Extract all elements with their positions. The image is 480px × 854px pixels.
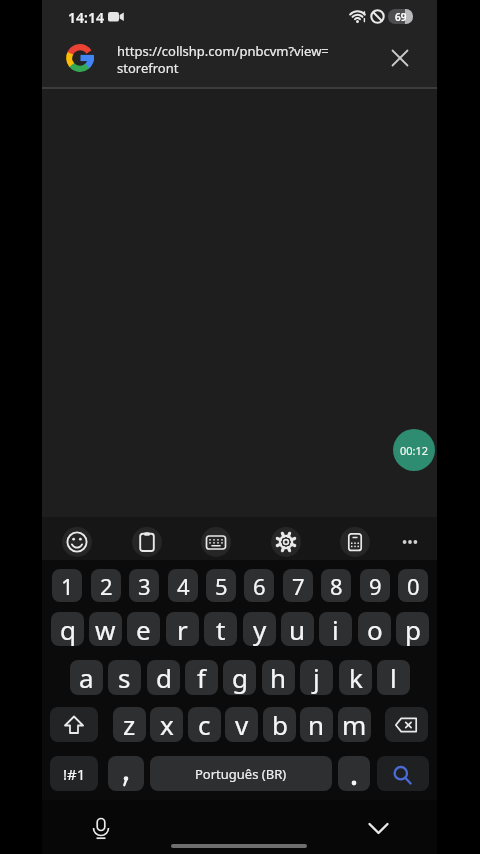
button[interactable] xyxy=(377,756,429,791)
staticText: 0 xyxy=(407,571,420,601)
staticText: p xyxy=(405,612,421,646)
button[interactable]: 2 xyxy=(91,569,121,602)
staticText: y xyxy=(253,612,267,646)
button[interactable]: 8 xyxy=(321,569,351,602)
staticText: Português (BR) xyxy=(195,765,287,783)
button[interactable] xyxy=(108,756,144,791)
staticText: c xyxy=(198,707,211,742)
staticText: o xyxy=(367,612,383,646)
staticText: m xyxy=(342,707,367,742)
button[interactable]: c xyxy=(188,707,221,742)
button[interactable]: z xyxy=(113,707,146,742)
staticText: z xyxy=(123,707,136,742)
staticText: w xyxy=(95,612,116,646)
button[interactable] xyxy=(132,527,162,557)
button[interactable] xyxy=(271,527,301,557)
button[interactable]: b xyxy=(263,707,296,742)
staticText: https://collshp.com/pnbcvm?view= storefr… xyxy=(117,42,329,77)
staticText: i xyxy=(332,612,339,646)
button[interactable] xyxy=(388,46,412,70)
button[interactable] xyxy=(340,527,370,557)
button[interactable] xyxy=(395,527,425,557)
button[interactable]: f xyxy=(185,660,218,695)
button[interactable] xyxy=(88,815,114,841)
button[interactable]: 6 xyxy=(244,569,274,602)
staticText: s xyxy=(118,660,131,695)
button[interactable]: t xyxy=(204,612,237,646)
button[interactable]: 3 xyxy=(129,569,159,602)
button[interactable]: u xyxy=(281,612,314,646)
button[interactable]: p xyxy=(396,612,429,646)
button[interactable]: o xyxy=(358,612,391,646)
staticText: 14:14 xyxy=(68,8,104,27)
button[interactable]: 9 xyxy=(360,569,390,602)
staticText: b xyxy=(272,707,288,742)
button[interactable]: a xyxy=(70,660,103,695)
staticText: v xyxy=(235,707,249,742)
button[interactable] xyxy=(338,756,370,791)
button[interactable]: w xyxy=(89,612,122,646)
staticText: 7 xyxy=(292,571,305,601)
staticText: 6 xyxy=(253,571,266,601)
staticText: u xyxy=(289,612,306,646)
button[interactable]: Português (BR) xyxy=(150,756,332,791)
staticText: e xyxy=(136,612,151,646)
button[interactable]: j xyxy=(300,660,333,695)
button[interactable]: v xyxy=(225,707,258,742)
button[interactable]: g xyxy=(223,660,256,695)
button[interactable]: 0 xyxy=(398,569,428,602)
button[interactable]: l xyxy=(377,660,410,695)
staticText: h xyxy=(270,660,287,695)
button[interactable]: 1 xyxy=(52,569,82,602)
staticText: k xyxy=(349,660,363,695)
button[interactable]: m xyxy=(338,707,371,742)
staticText: 8 xyxy=(330,571,343,601)
staticText: x xyxy=(160,707,174,742)
staticText: f xyxy=(197,660,206,695)
button[interactable]: r xyxy=(166,612,199,646)
staticText: 69 xyxy=(395,10,407,24)
button[interactable]: h xyxy=(262,660,295,695)
button[interactable]: s xyxy=(108,660,141,695)
staticText: 2 xyxy=(100,571,113,601)
button[interactable]: q xyxy=(51,612,84,646)
button[interactable] xyxy=(366,817,391,842)
button[interactable] xyxy=(385,707,428,742)
staticText: 3 xyxy=(138,571,151,601)
staticText: a xyxy=(79,660,94,695)
staticText: 5 xyxy=(215,571,228,601)
staticText: n xyxy=(308,707,325,742)
staticText: 9 xyxy=(369,571,382,601)
button[interactable]: 00:12 xyxy=(393,429,435,471)
staticText: t xyxy=(216,612,226,646)
button[interactable]: 4 xyxy=(168,569,198,602)
button[interactable]: 5 xyxy=(206,569,236,602)
button[interactable] xyxy=(62,527,92,557)
button[interactable]: d xyxy=(147,660,180,695)
staticText: q xyxy=(60,612,76,646)
button[interactable]: i xyxy=(319,612,352,646)
staticText: r xyxy=(177,612,188,646)
button[interactable]: e xyxy=(127,612,160,646)
button[interactable] xyxy=(201,527,231,557)
button[interactable]: k xyxy=(339,660,372,695)
staticText: 00:12 xyxy=(400,443,429,458)
button[interactable]: n xyxy=(300,707,333,742)
staticText: !#1 xyxy=(63,764,86,784)
staticText: 4 xyxy=(177,571,190,601)
staticText: g xyxy=(232,660,248,695)
button[interactable]: 7 xyxy=(283,569,313,602)
button[interactable]: x xyxy=(150,707,183,742)
staticText: l xyxy=(390,660,397,695)
button[interactable]: y xyxy=(243,612,276,646)
staticText: 1 xyxy=(61,571,74,601)
button[interactable] xyxy=(50,707,98,742)
button[interactable]: !#1 xyxy=(50,756,98,791)
staticText: j xyxy=(313,660,320,695)
staticText: d xyxy=(156,660,172,695)
